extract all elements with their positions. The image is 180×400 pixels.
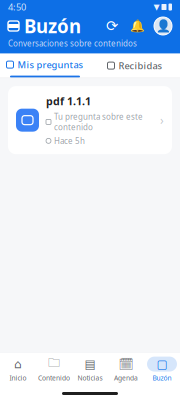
staticText: ⟳ (106, 18, 118, 34)
staticText: ⌂ (14, 357, 22, 371)
button[interactable]: Actualizar (104, 18, 120, 34)
staticText: pdf 1.1.1 (46, 94, 91, 108)
button[interactable]: ⌂ (0, 356, 36, 382)
staticText: Mis preguntas (17, 58, 83, 71)
staticText: 🗓 (118, 357, 133, 371)
staticText: › (160, 112, 164, 128)
button[interactable]: ▤ (72, 356, 108, 382)
staticText: 🔔 (129, 19, 144, 33)
button[interactable]: Notificaciones (129, 18, 145, 34)
button[interactable]: Recibidas (90, 54, 180, 78)
staticText: 👤 (155, 19, 170, 33)
staticText: Hace 5h (54, 135, 85, 146)
button[interactable]: 🗀 (36, 356, 72, 382)
staticText: Agenda (114, 374, 138, 382)
staticText: Conversaciones sobre contenidos (8, 38, 137, 49)
button[interactable]: ▢ (144, 356, 180, 382)
staticText: ▤ (84, 357, 95, 371)
staticText: ▼ (153, 2, 159, 12)
staticText: Tu pregunta sobre este contenido (54, 111, 143, 132)
staticText: Recibidas (118, 59, 162, 72)
staticText: Inicio (9, 374, 26, 382)
staticText: Noticias (77, 374, 102, 382)
staticText: Buzón (24, 14, 81, 38)
staticText: 4:50 (8, 1, 26, 13)
staticText: 🗀 (48, 354, 60, 374)
staticText: Contenido (38, 374, 70, 382)
button[interactable]: Perfil (154, 17, 172, 35)
staticText: ▢ (156, 357, 167, 371)
button[interactable]: Mis preguntas (0, 54, 90, 78)
staticText: Buzón (152, 374, 171, 382)
button[interactable]: 🗓 (108, 356, 144, 382)
button[interactable]: pdf 1.1.1 (8, 86, 172, 154)
